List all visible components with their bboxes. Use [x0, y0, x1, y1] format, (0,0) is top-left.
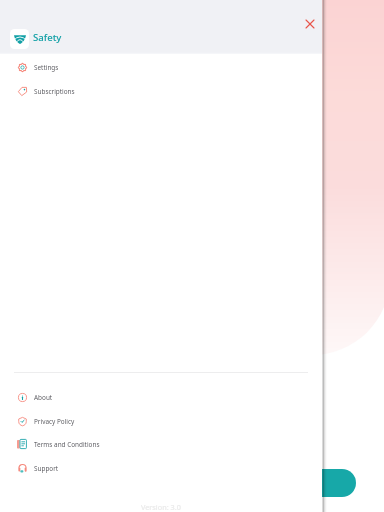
- button[interactable]: Subscriptions: [0, 79, 322, 103]
- staticText: Safety: [33, 31, 62, 44]
- staticText: Settings: [34, 63, 59, 72]
- staticText: Version: 3.0: [141, 502, 181, 512]
- button[interactable]: About: [0, 385, 322, 409]
- staticText: Terms and Conditions: [34, 440, 100, 449]
- staticText: Support: [34, 464, 59, 473]
- button[interactable]: Terms and Conditions: [0, 432, 322, 456]
- button[interactable]: Close: [300, 14, 319, 33]
- staticText: Privacy Policy: [34, 417, 75, 426]
- button[interactable]: Settings: [0, 55, 322, 79]
- button[interactable]: Get Started: [260, 469, 356, 497]
- button[interactable]: Privacy Policy: [0, 409, 322, 433]
- button[interactable]: Support: [0, 456, 322, 480]
- staticText: Subscriptions: [34, 87, 75, 96]
- button[interactable]: Safety: [10, 29, 62, 49]
- staticText: About: [34, 393, 53, 402]
